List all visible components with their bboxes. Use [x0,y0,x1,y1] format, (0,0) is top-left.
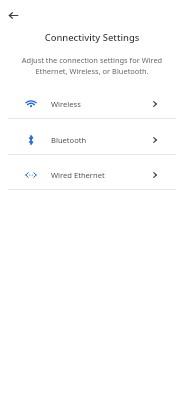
button[interactable]: Bluetooth [0,119,184,155]
button[interactable]: Wireless [0,83,184,119]
staticText: Adjust the connection settings for Wired… [16,55,168,76]
staticText: Bluetooth [51,135,87,145]
staticText: Connectivity Settings [0,31,184,44]
staticText: Wireless [51,99,81,109]
staticText: Wired Ethernet [51,170,105,180]
button[interactable]: Back [2,4,25,27]
button[interactable]: Wired Ethernet [0,154,184,190]
